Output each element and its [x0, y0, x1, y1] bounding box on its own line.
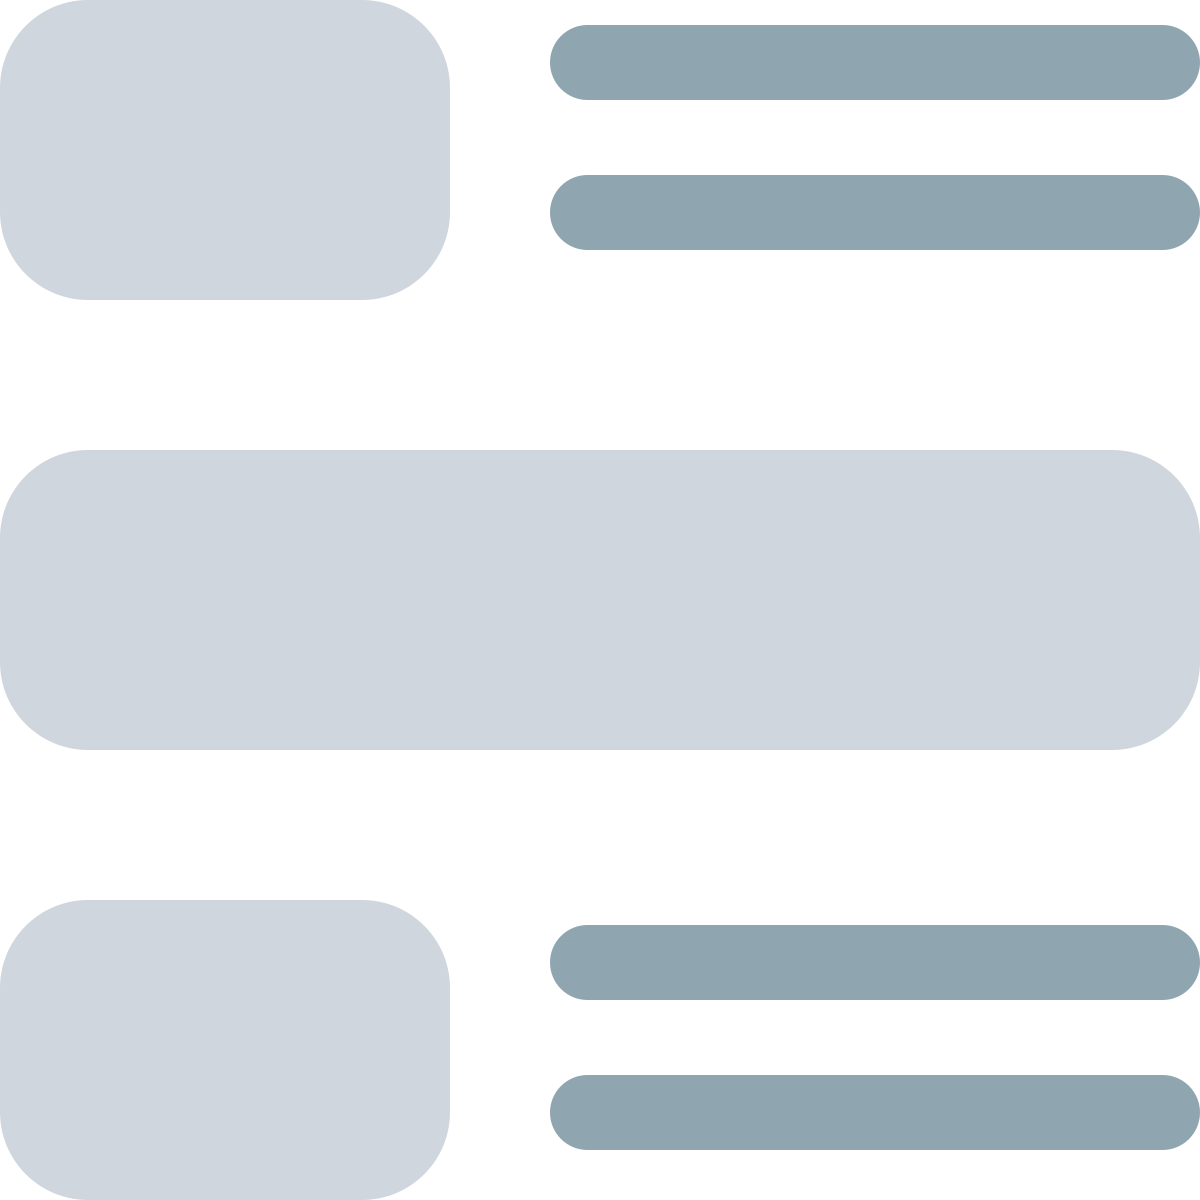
- button[interactable]: Loading list item: [0, 0, 1200, 300]
- button[interactable]: Loading list item: [0, 900, 1200, 1200]
- button[interactable]: Loading media: [0, 450, 1200, 750]
